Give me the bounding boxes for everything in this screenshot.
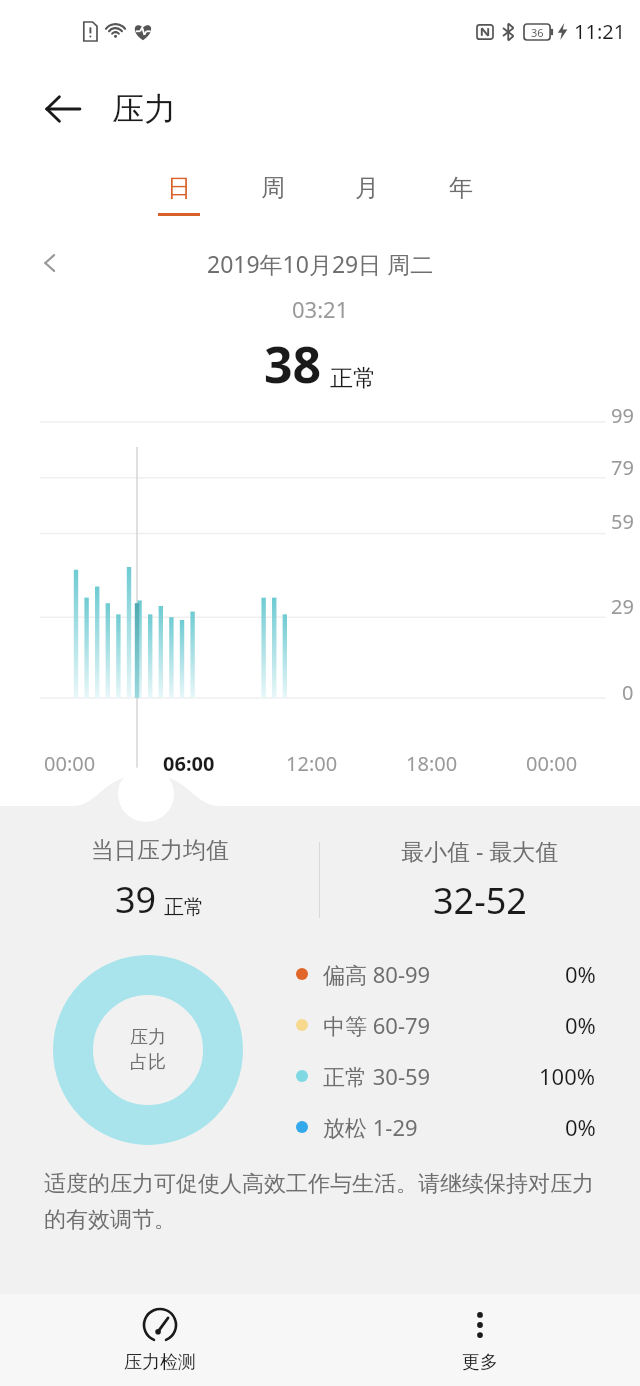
staticText: 正常 — [164, 895, 204, 920]
staticText: 0 — [622, 679, 634, 706]
staticText: 100% — [539, 1061, 596, 1091]
staticText: 周 — [261, 173, 285, 203]
staticText: 正常 — [330, 364, 376, 393]
staticText: 压力检测 — [124, 1351, 196, 1374]
staticText: 32-52 — [433, 876, 527, 925]
button[interactable]: 压力检测 — [0, 1294, 320, 1386]
button[interactable]: 日 — [150, 156, 208, 232]
staticText: 29 — [611, 593, 634, 620]
staticText: 当日压力均值 — [91, 836, 229, 865]
staticText: 11:21 — [574, 18, 626, 45]
staticText: 99 — [611, 402, 634, 429]
staticText: 压力 — [130, 1026, 166, 1049]
staticText: 38 — [264, 330, 322, 398]
button[interactable]: 月 — [338, 156, 396, 232]
staticText: 压力 — [112, 89, 176, 129]
staticText: 偏高 80-99 — [323, 959, 431, 989]
staticText: 06:00 — [163, 750, 215, 777]
button[interactable]: 前一天 — [26, 238, 76, 288]
button[interactable]: 周 — [244, 156, 302, 232]
staticText: 0% — [565, 1112, 596, 1142]
staticText: 00:00 — [44, 750, 96, 777]
staticText: 0% — [565, 959, 596, 989]
staticText: 更多 — [462, 1351, 498, 1374]
button[interactable]: 返回 — [34, 80, 92, 138]
staticText: 放松 1-29 — [323, 1112, 418, 1142]
staticText: 最小值 - 最大值 — [401, 835, 559, 866]
staticText: 正常 30-59 — [323, 1061, 431, 1091]
staticText: 年 — [449, 173, 473, 203]
staticText: 36 — [531, 25, 544, 40]
staticText: 03:21 — [292, 294, 349, 324]
button[interactable]: 年 — [432, 156, 490, 232]
staticText: 2019年10月29日 周二 — [207, 248, 434, 279]
staticText: 12:00 — [286, 750, 338, 777]
staticText: 中等 60-79 — [323, 1010, 431, 1040]
staticText: 月 — [355, 173, 379, 203]
staticText: 00:00 — [526, 750, 578, 777]
staticText: 39 — [115, 875, 157, 924]
staticText: 日 — [167, 173, 191, 203]
staticText: 79 — [611, 454, 634, 481]
staticText: 59 — [611, 508, 634, 535]
staticText: 占比 — [130, 1051, 166, 1074]
button[interactable]: 更多 — [320, 1294, 640, 1386]
staticText: 0% — [565, 1010, 596, 1040]
staticText: 适度的压力可促使人高效工作与生活。请继续保持对压力的有效调节。 — [44, 1170, 596, 1233]
staticText: 18:00 — [406, 750, 458, 777]
